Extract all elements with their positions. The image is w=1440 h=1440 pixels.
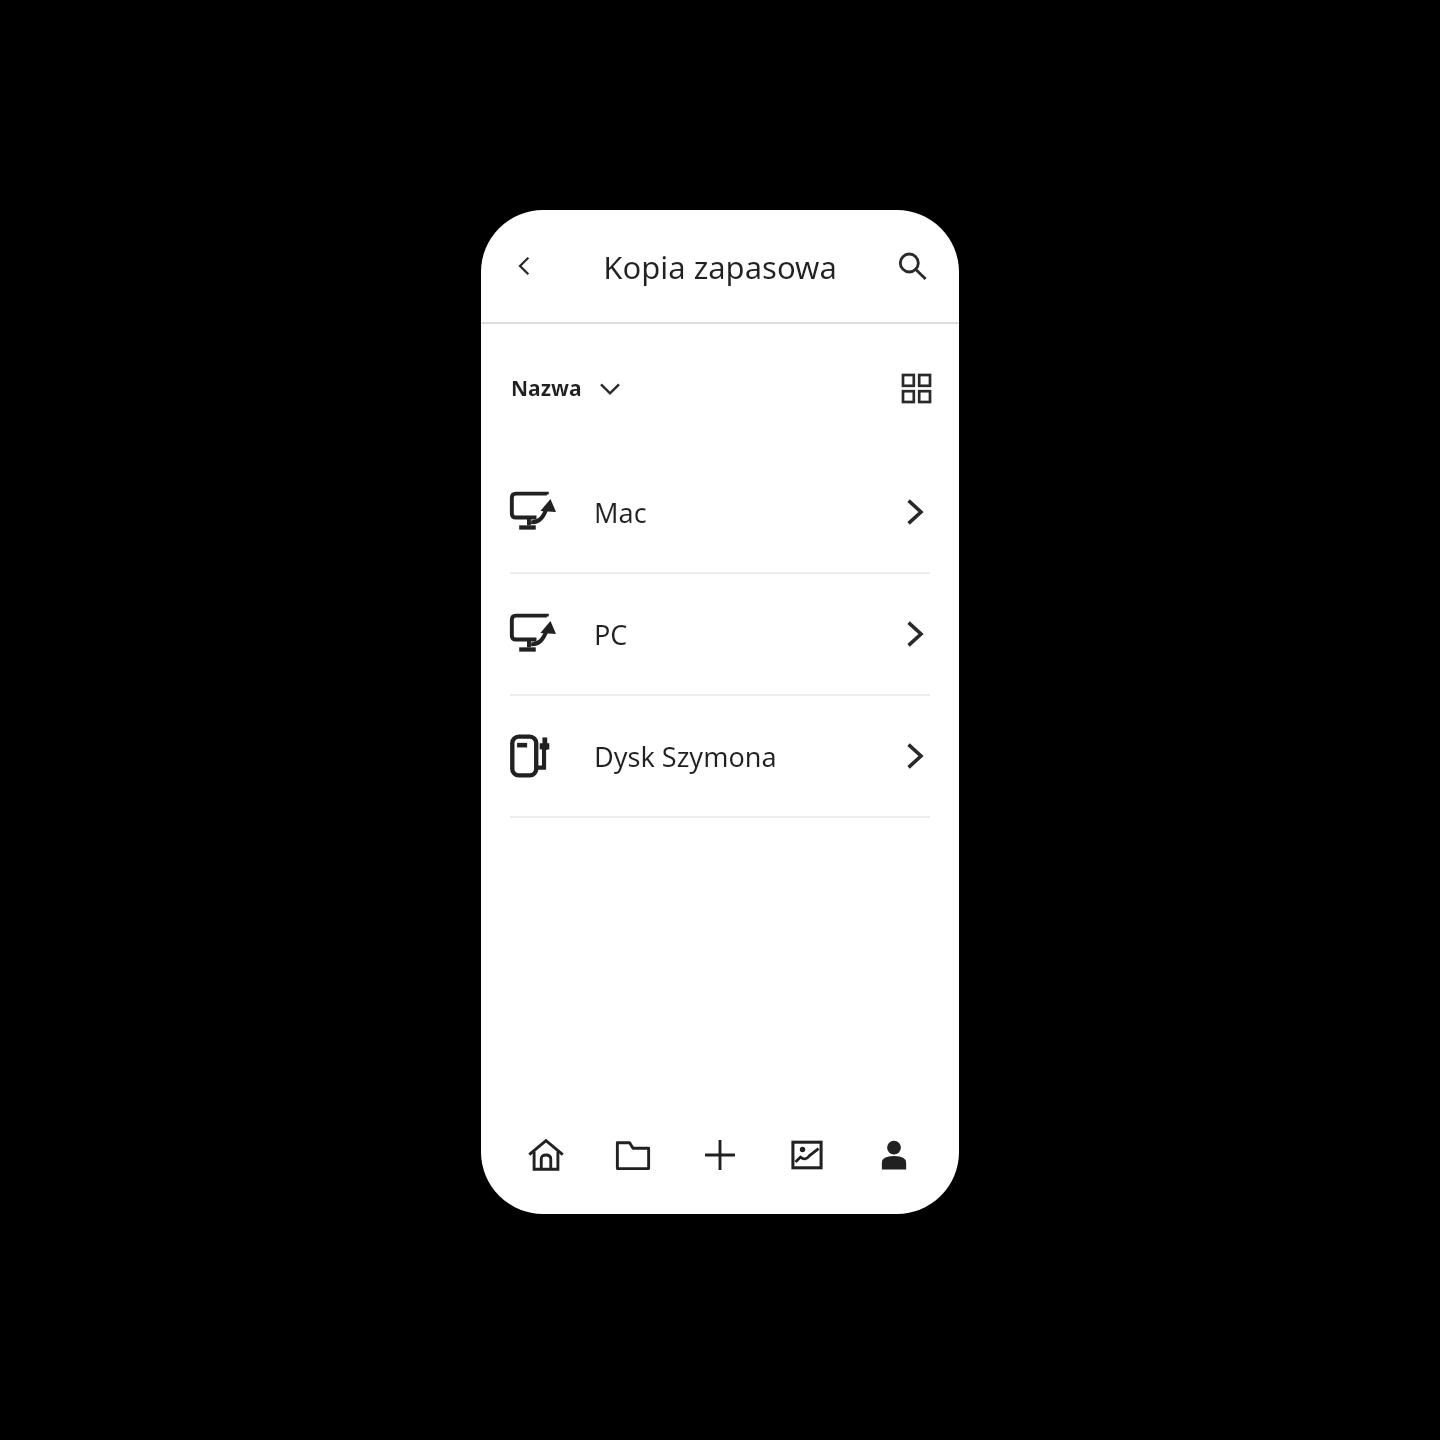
staticText: Nazwa: [511, 374, 582, 403]
button[interactable]: Account: [862, 1123, 926, 1187]
button[interactable]: Back: [499, 241, 549, 291]
staticText: Mac: [594, 494, 900, 531]
button[interactable]: Home: [513, 1122, 579, 1188]
button[interactable]: Dysk Szymona: [481, 696, 959, 816]
button[interactable]: Add: [687, 1122, 753, 1188]
button[interactable]: Switch to grid view: [890, 362, 943, 415]
button[interactable]: Mac: [481, 452, 959, 572]
staticText: Kopia zapasowa: [603, 246, 837, 288]
button[interactable]: Nazwa: [497, 364, 636, 413]
button[interactable]: PC: [481, 574, 959, 694]
button[interactable]: Photos: [775, 1123, 839, 1187]
staticText: PC: [594, 616, 900, 653]
staticText: Dysk Szymona: [594, 738, 900, 775]
button[interactable]: Search: [883, 237, 941, 295]
button[interactable]: Files: [600, 1122, 666, 1188]
